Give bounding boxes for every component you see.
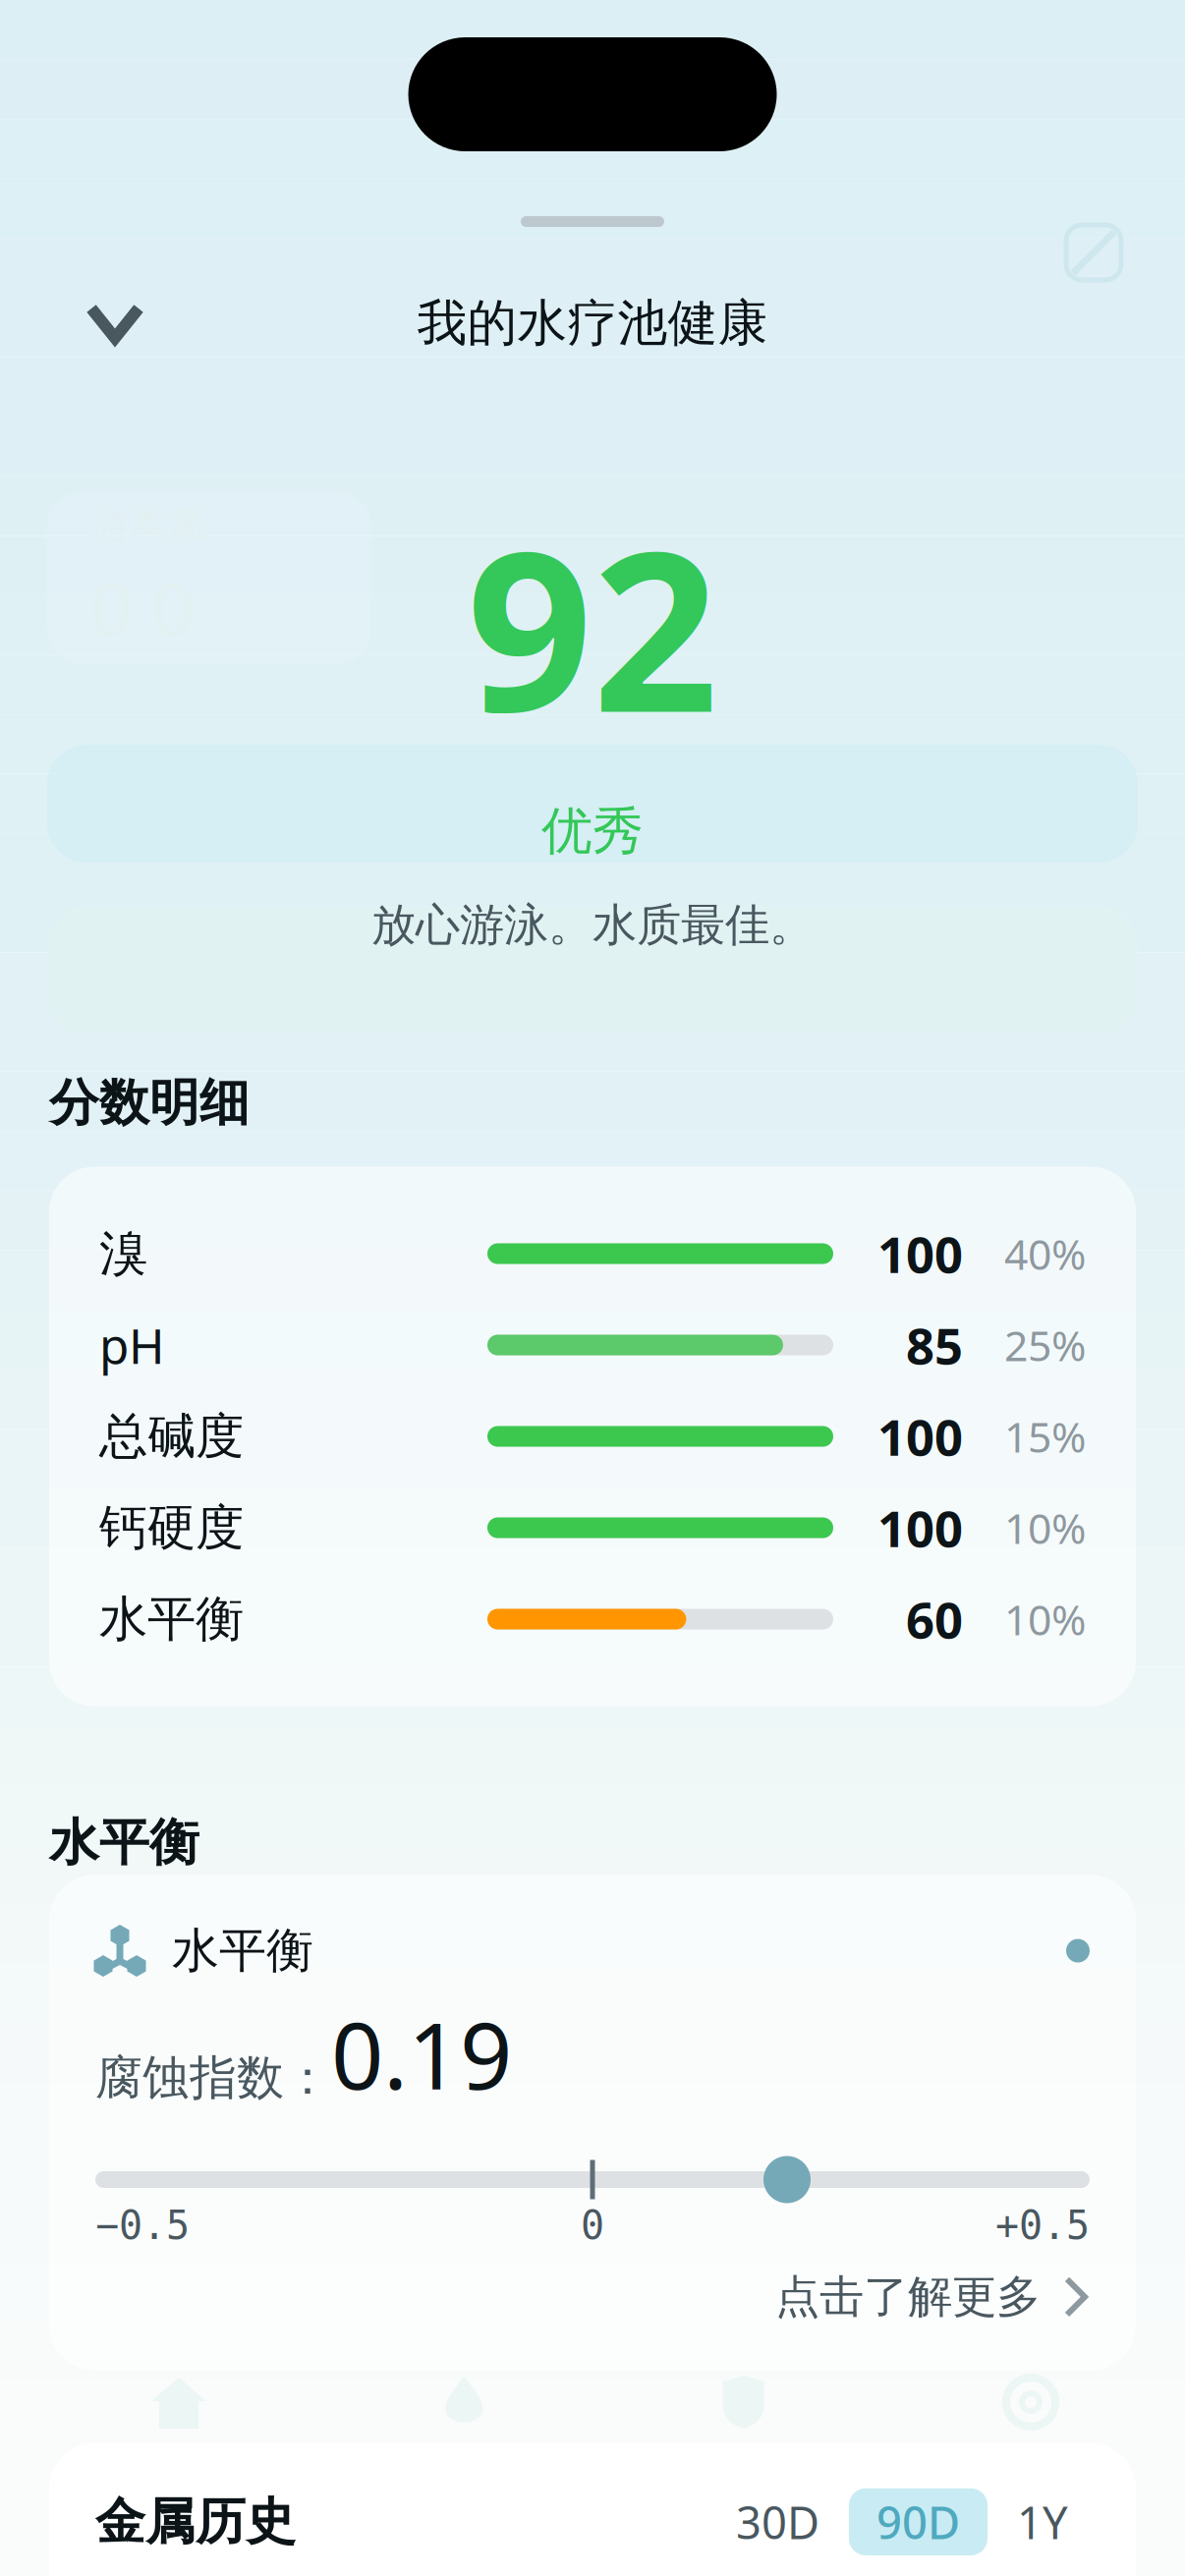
staticText: 水平衡: [49, 1812, 199, 1873]
staticText: 0.19: [331, 1993, 512, 2115]
staticText: 优秀: [541, 800, 644, 862]
staticText: 1Y: [1017, 2492, 1068, 2551]
button[interactable]: 1Y: [995, 2479, 1090, 2565]
staticText: 总碱度: [99, 1407, 244, 1466]
staticText: 我的水疗池健康: [417, 293, 768, 354]
staticText: 15%: [1004, 1409, 1086, 1464]
button[interactable]: 点击了解更多: [95, 2262, 1090, 2332]
staticText: 60: [906, 1586, 963, 1652]
staticText: 10%: [1004, 1500, 1086, 1556]
staticText: 90D: [876, 2492, 960, 2551]
staticText: 溴: [99, 1224, 147, 1283]
staticText: 分数明细: [49, 1072, 250, 1133]
staticText: 100: [877, 1221, 963, 1287]
staticText: 放心游泳。水质最佳。: [371, 898, 814, 953]
staticText: −0.5: [95, 2203, 190, 2248]
staticText: 钙硬度: [99, 1498, 244, 1558]
staticText: 25%: [1004, 1317, 1086, 1373]
staticText: +0.5: [995, 2203, 1090, 2248]
staticText: 0: [581, 2203, 604, 2248]
staticText: 点击了解更多: [775, 2270, 1041, 2324]
staticText: 腐蚀指数：: [95, 2049, 331, 2107]
staticText: 30D: [736, 2492, 819, 2551]
button[interactable]: 30D: [714, 2479, 841, 2565]
staticText: 100: [877, 1495, 963, 1561]
staticText: 金属历史: [95, 2491, 296, 2552]
staticText: pH: [99, 1313, 165, 1377]
button[interactable]: 90D: [849, 2488, 987, 2555]
staticText: 92: [467, 480, 718, 772]
staticText: 40%: [1004, 1226, 1086, 1282]
staticText: 水平衡: [99, 1589, 244, 1649]
staticText: 10%: [1004, 1591, 1086, 1647]
staticText: 水平衡: [172, 1922, 313, 1980]
staticText: 100: [877, 1403, 963, 1469]
button[interactable]: Collapse sheet: [0, 269, 185, 377]
staticText: 85: [906, 1312, 963, 1378]
